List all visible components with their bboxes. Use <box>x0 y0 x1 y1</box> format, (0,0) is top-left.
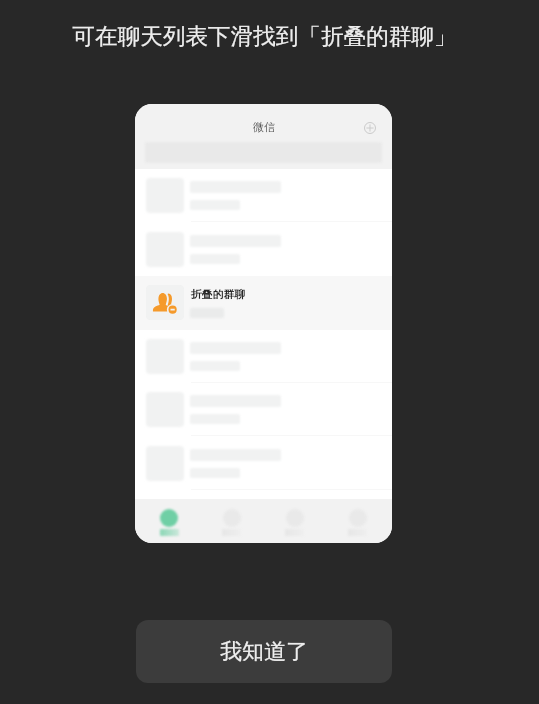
button[interactable]: Add <box>363 121 377 135</box>
button[interactable]: Chats <box>138 499 200 543</box>
button[interactable] <box>135 330 392 384</box>
button[interactable]: 折叠的群聊 <box>135 276 392 330</box>
button[interactable] <box>135 437 392 491</box>
staticText: 微信 <box>253 120 275 134</box>
button[interactable] <box>135 383 392 437</box>
staticText: 我知道了 <box>220 638 308 666</box>
button[interactable] <box>135 223 392 277</box>
button[interactable] <box>135 169 392 223</box>
staticText: 可在聊天列表下滑找到「折叠的群聊」 <box>0 22 534 50</box>
staticText: 折叠的群聊 <box>191 288 245 302</box>
button[interactable]: 我知道了 <box>136 620 392 683</box>
button[interactable]: Tab <box>326 499 389 543</box>
